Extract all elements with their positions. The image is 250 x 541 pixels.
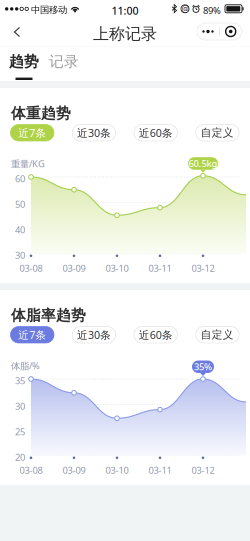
staticText: 11:00 (111, 4, 138, 18)
staticText: 50 (15, 198, 25, 210)
staticText: 20 (15, 451, 25, 463)
staticText: 60.5kg (188, 157, 217, 170)
staticText: 03-09 (62, 262, 85, 274)
staticText: 03-09 (62, 464, 85, 476)
staticText: 03-12 (191, 262, 214, 274)
button[interactable]: 记录 (51, 55, 77, 68)
button[interactable]: 自定义 (196, 124, 239, 141)
staticText: 30 (15, 400, 25, 412)
staticText: 自定义 (201, 126, 234, 139)
staticText: 03-11 (148, 262, 171, 274)
staticText: 近7条 (18, 126, 46, 140)
staticText: 上称记录 (93, 24, 157, 44)
button[interactable]: 近30条 (72, 124, 116, 141)
staticText: 重量/KG (11, 157, 45, 170)
button[interactable]: 近7条 (10, 124, 54, 141)
staticText: 近30条 (77, 126, 111, 140)
staticText: 体重趋势 (11, 104, 71, 122)
staticText: 近7条 (18, 328, 46, 342)
button[interactable]: 近7条 (10, 326, 54, 343)
staticText: 03-10 (105, 262, 128, 274)
staticText: 03-10 (105, 464, 128, 476)
button[interactable]: 近30条 (72, 326, 116, 343)
staticText: 体脂率趋势 (11, 306, 86, 324)
staticText: 40 (15, 223, 25, 236)
staticText: 03-12 (191, 464, 214, 476)
staticText: 35% (194, 361, 212, 373)
staticText: @ (181, 3, 188, 14)
staticText: 03-08 (19, 262, 42, 274)
staticText: 30 (15, 249, 25, 261)
button[interactable]: 近60条 (134, 124, 177, 141)
staticText: 近60条 (139, 126, 173, 140)
staticText: 89% (203, 4, 221, 17)
staticText: 记录 (49, 52, 79, 70)
button[interactable]: Back (5, 20, 29, 44)
staticText: 近60条 (139, 328, 173, 342)
staticText: 近30条 (77, 328, 111, 342)
button[interactable]: More (197, 23, 219, 40)
button[interactable]: Close (220, 23, 242, 40)
staticText: 趋势 (9, 52, 39, 70)
button[interactable]: 自定义 (196, 326, 239, 343)
staticText: 体脂/% (11, 359, 40, 372)
staticText: 60 (15, 172, 25, 185)
button[interactable]: 近60条 (134, 326, 177, 343)
staticText: 自定义 (201, 328, 234, 341)
staticText: 35 (15, 374, 25, 387)
staticText: 03-11 (148, 464, 171, 476)
staticText: 中国移动 (31, 4, 67, 16)
staticText: 03-08 (19, 464, 42, 476)
staticText: 25 (15, 425, 25, 438)
button[interactable]: 趋势 (11, 55, 37, 80)
